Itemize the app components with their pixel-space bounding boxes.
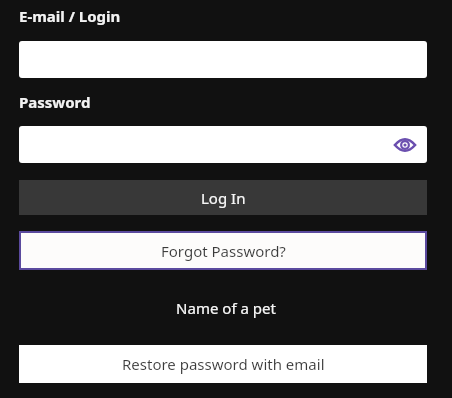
button[interactable]: Show password bbox=[19, 126, 427, 163]
button[interactable]: Log In bbox=[19, 180, 427, 215]
staticText: Forgot Password? bbox=[161, 241, 286, 261]
button[interactable]: Show password bbox=[391, 131, 419, 159]
staticText: Password bbox=[19, 92, 91, 112]
staticText: Log In bbox=[201, 188, 246, 208]
staticText: E-mail / Login bbox=[19, 6, 121, 26]
staticText: Restore password with email bbox=[122, 354, 325, 374]
staticText: Name of a pet bbox=[176, 298, 276, 318]
button[interactable]: Forgot Password? bbox=[21, 233, 425, 268]
button[interactable]: Restore password with email bbox=[19, 345, 427, 383]
button[interactable] bbox=[19, 41, 427, 78]
